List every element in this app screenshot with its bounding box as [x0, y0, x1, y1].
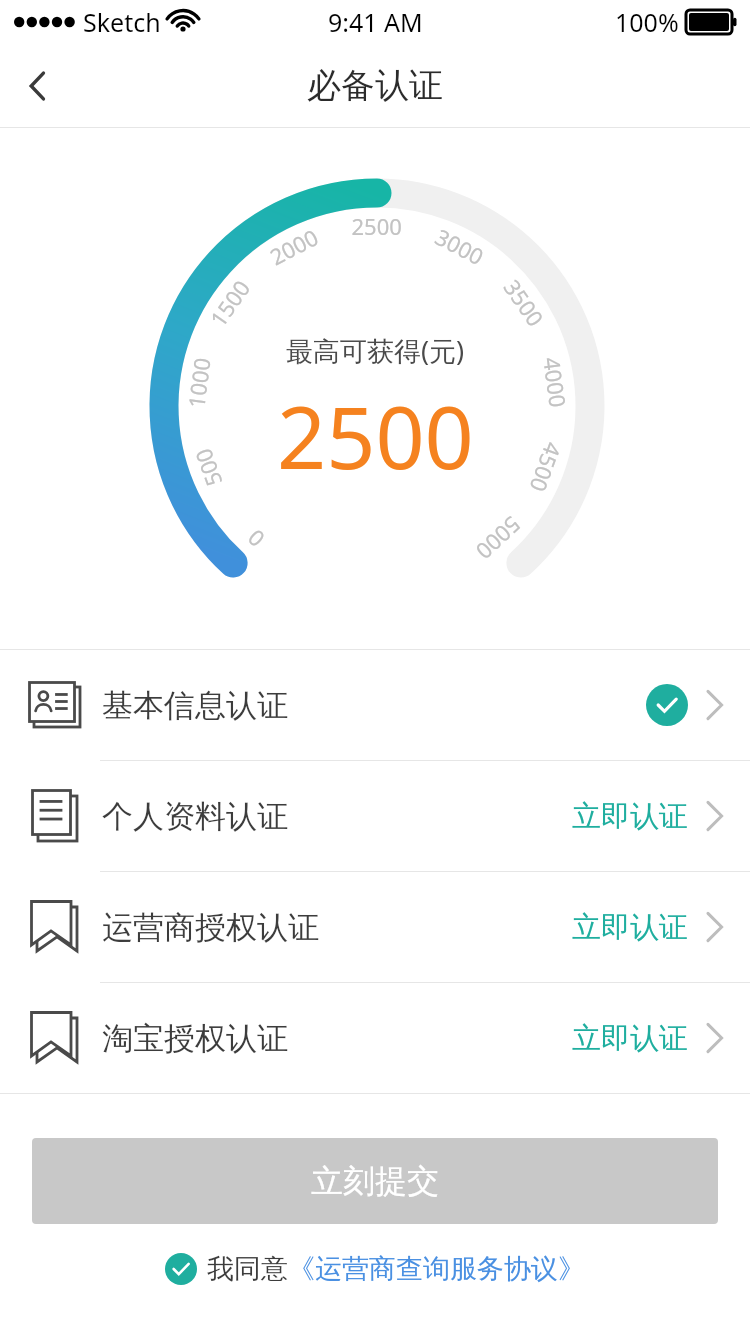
button[interactable]: 个人资料认证 — [0, 761, 750, 871]
staticText: 立即认证 — [572, 1020, 688, 1057]
staticText: 《运营商查询服务协议》 — [288, 1252, 585, 1286]
staticText: 9:41 AM — [328, 5, 423, 39]
button[interactable]: Back — [0, 48, 76, 124]
staticText: 我同意 — [207, 1252, 288, 1286]
staticText: 基本信息认证 — [102, 686, 288, 725]
staticText: 淘宝授权认证 — [102, 1019, 288, 1058]
staticText: 立即认证 — [572, 798, 688, 835]
staticText: 运营商授权认证 — [102, 908, 319, 947]
staticText: 最高可获得(元) — [286, 332, 465, 369]
button[interactable]: 立刻提交 — [32, 1138, 718, 1224]
staticText: 立即认证 — [572, 909, 688, 946]
staticText: 100% — [615, 5, 679, 39]
button[interactable]: 我同意 — [165, 1252, 585, 1286]
button[interactable]: 淘宝授权认证 — [0, 983, 750, 1093]
staticText: 2500 — [277, 377, 474, 494]
button[interactable]: 基本信息认证 — [0, 650, 750, 760]
button[interactable]: 运营商授权认证 — [0, 872, 750, 982]
staticText: 个人资料认证 — [102, 797, 288, 836]
staticText: Sketch — [83, 5, 161, 39]
staticText: 立刻提交 — [311, 1161, 439, 1201]
staticText: 必备认证 — [307, 64, 443, 107]
